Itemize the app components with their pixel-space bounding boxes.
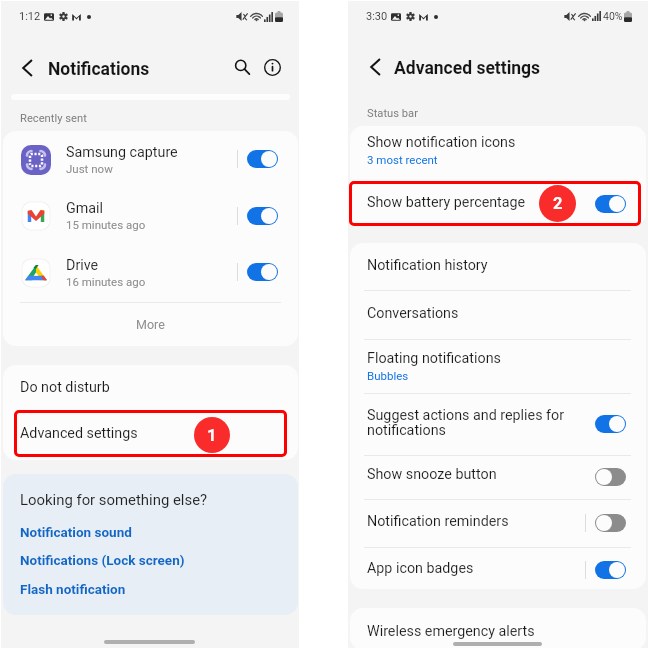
staticText: 2	[553, 194, 563, 213]
staticText: Show battery percentage	[367, 194, 526, 211]
staticText: Status bar	[367, 107, 418, 120]
staticText: Flash notification	[20, 581, 126, 597]
button[interactable]	[3, 132, 298, 188]
staticText: Advanced settings	[394, 58, 541, 79]
staticText: More	[136, 317, 165, 332]
button[interactable]	[3, 365, 298, 412]
staticText: Wireless emergency alerts	[367, 623, 535, 640]
button[interactable]: About notifications	[261, 56, 284, 79]
button[interactable]	[3, 245, 298, 301]
button[interactable]: Notification sound	[20, 524, 132, 540]
staticText: Looking for something else?	[20, 491, 208, 508]
staticText: Bubbles	[367, 369, 409, 382]
staticText: Notifications (Lock screen)	[20, 552, 185, 568]
button[interactable]	[350, 339, 646, 393]
button[interactable]: On	[247, 207, 278, 225]
button[interactable]	[350, 393, 646, 454]
button[interactable]: On	[595, 561, 626, 579]
staticText: 3 most recent	[367, 153, 438, 166]
staticText: Gmail	[66, 200, 104, 217]
button[interactable]: Notifications (Lock screen)	[20, 552, 185, 568]
staticText: Drive	[66, 257, 99, 274]
staticText: Show snooze button	[367, 466, 497, 483]
staticText: Samsung capture	[66, 144, 178, 161]
button[interactable]	[350, 181, 646, 226]
staticText: Recently sent	[20, 112, 87, 125]
button[interactable]: On	[247, 263, 278, 281]
staticText: Notification sound	[20, 524, 132, 540]
button[interactable]: Flash notification	[20, 581, 126, 597]
staticText: Notification reminders	[367, 513, 509, 530]
button[interactable]	[3, 188, 298, 244]
staticText: Do not disturb	[20, 379, 110, 396]
button[interactable]: Back	[366, 57, 384, 76]
button[interactable]	[350, 244, 646, 289]
button[interactable]	[350, 609, 646, 648]
button[interactable]	[350, 546, 646, 588]
staticText: Notifications	[48, 59, 150, 80]
button[interactable]: Off	[595, 514, 626, 532]
staticText: Show notification icons	[367, 134, 516, 151]
button[interactable]: Back	[18, 58, 36, 77]
staticText: Just now	[66, 162, 113, 175]
button[interactable]	[350, 454, 646, 499]
staticText: 15 minutes ago	[66, 218, 146, 231]
button[interactable]: On	[595, 415, 626, 433]
staticText: Notification history	[367, 257, 488, 274]
button[interactable]: On	[595, 195, 626, 213]
staticText: 16 minutes ago	[66, 275, 146, 288]
staticText: 1:12	[19, 10, 41, 23]
button[interactable]: More	[3, 302, 298, 346]
button[interactable]: On	[247, 150, 278, 168]
staticText: App icon badges	[367, 560, 474, 577]
staticText: Conversations	[367, 305, 459, 322]
button[interactable]: Off	[595, 468, 626, 486]
staticText: 3:30	[366, 10, 388, 23]
staticText: 1	[207, 426, 217, 445]
staticText: Floating notifications	[367, 350, 501, 367]
button[interactable]	[350, 127, 646, 181]
button[interactable]: Search	[230, 55, 253, 78]
staticText: Advanced settings	[20, 425, 138, 442]
button[interactable]	[3, 412, 298, 460]
staticText: Suggest actions and replies for	[367, 407, 565, 424]
button[interactable]	[350, 499, 646, 546]
staticText: 40%	[603, 10, 623, 22]
staticText: notifications	[367, 422, 446, 439]
button[interactable]	[350, 288, 646, 339]
